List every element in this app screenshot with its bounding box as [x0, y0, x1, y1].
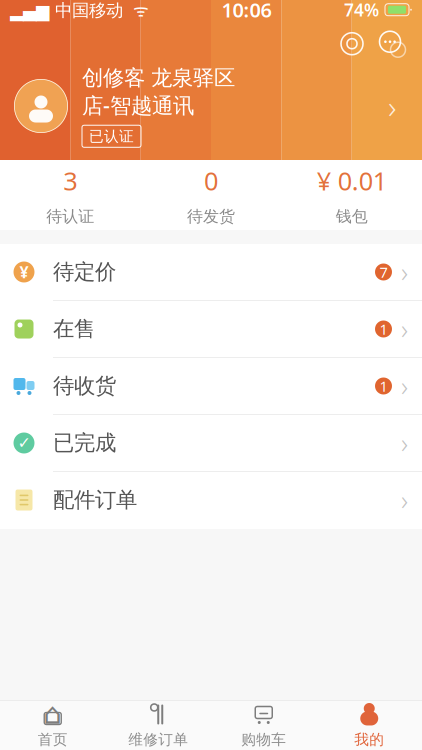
staticText: › — [388, 85, 396, 127]
staticText: 待定价 — [53, 259, 116, 285]
button[interactable]: 创修客 龙泉驿区店-智越通讯 — [0, 65, 422, 147]
staticText: ▂▄▆ 中国移动 ᯤ — [10, 0, 149, 21]
button[interactable]: ✓ — [0, 415, 422, 472]
staticText: 待收货 — [53, 373, 116, 399]
button[interactable]: 购物车 — [211, 701, 316, 750]
staticText: ✓ — [17, 434, 30, 452]
staticText: ¥ — [19, 261, 28, 283]
staticText: 74% — [344, 0, 379, 21]
staticText: 配件订单 — [53, 487, 137, 513]
staticText: 7 — [379, 262, 387, 282]
staticText: 待发货 — [187, 206, 235, 226]
staticText: › — [401, 254, 408, 290]
staticText: 已认证 — [89, 127, 134, 145]
button[interactable]: 设置 — [332, 24, 372, 64]
button[interactable]: ¥ — [0, 244, 422, 301]
staticText: 1 — [379, 319, 387, 339]
staticText: 10:06 — [221, 0, 271, 23]
staticText: 在售 — [53, 316, 95, 342]
button[interactable]: 0 — [141, 160, 281, 230]
staticText: 我的 — [354, 730, 384, 748]
staticText: 3 — [63, 164, 77, 197]
button[interactable]: 3 — [0, 160, 141, 230]
staticText: 创修客 龙泉驿区店-智越通讯 — [82, 65, 235, 119]
button[interactable]: 配件订单 — [0, 472, 422, 529]
button[interactable]: ⌂ — [0, 701, 105, 750]
button[interactable]: ¥ 0.01 — [281, 160, 422, 230]
button[interactable]: 消息 — [372, 24, 412, 64]
staticText: › — [401, 425, 408, 461]
staticText: 购物车 — [241, 730, 286, 748]
staticText: › — [401, 482, 408, 518]
staticText: 首页 — [38, 730, 68, 748]
staticText: 0 — [204, 164, 218, 197]
staticText: ¥ 0.01 — [317, 164, 387, 197]
staticText: 已完成 — [53, 430, 116, 456]
staticText: 待认证 — [46, 206, 94, 226]
button[interactable]: 在售 — [0, 301, 422, 358]
staticText: 钱包 — [336, 206, 368, 226]
button[interactable]: 我的 — [316, 701, 422, 750]
staticText: 维修订单 — [128, 730, 188, 748]
staticText: 1 — [379, 376, 387, 396]
staticText: › — [401, 311, 408, 347]
staticText: ⌂ — [43, 697, 62, 730]
staticText: › — [401, 368, 408, 404]
button[interactable]: 待收货 — [0, 358, 422, 415]
button[interactable]: 维修订单 — [105, 701, 211, 750]
